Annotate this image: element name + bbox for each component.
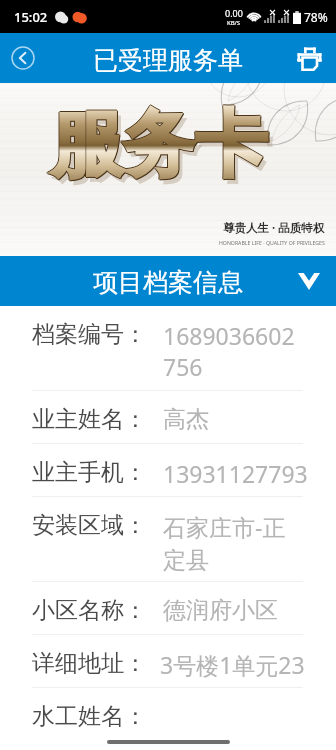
staticText: 服务卡 xyxy=(52,101,268,192)
staticText: KB/S xyxy=(227,19,241,27)
button[interactable]: 水工姓名： xyxy=(0,688,336,740)
button[interactable]: 详细地址： xyxy=(0,635,336,688)
staticText: 服务卡 xyxy=(51,99,267,190)
button[interactable]: 档案编号： xyxy=(0,306,336,391)
staticText: 13931127793 xyxy=(163,458,308,489)
button[interactable]: Print xyxy=(291,40,327,76)
staticText: 3号楼1单元23 xyxy=(160,649,336,680)
button[interactable]: Back xyxy=(5,40,41,76)
staticText: 服务卡 xyxy=(55,105,271,196)
staticText: 尊贵人生 · 品质特权 xyxy=(223,220,325,236)
staticText: 服务卡 xyxy=(51,101,267,192)
staticText: 项目档案信息 xyxy=(93,267,243,298)
staticText: 1689036602 756 xyxy=(163,320,308,383)
staticText: 安装区域： xyxy=(32,511,163,540)
staticText: 小区名称： xyxy=(32,596,163,625)
staticText: 已受理服务单 xyxy=(93,45,243,76)
staticText: 服务卡 xyxy=(51,100,267,191)
staticText: 服务卡 xyxy=(52,100,268,191)
staticText: 档案编号： xyxy=(32,320,163,349)
staticText: 78% xyxy=(304,9,328,25)
staticText: 德润府小区 xyxy=(163,596,308,625)
staticText: 业主姓名： xyxy=(32,405,163,434)
staticText: 详细地址： xyxy=(32,649,163,678)
other: Collapse xyxy=(298,273,320,290)
staticText: 石家庄市-正定县 xyxy=(163,511,308,575)
button[interactable]: 业主姓名： xyxy=(0,391,336,444)
staticText: 服务卡 xyxy=(50,100,266,191)
button[interactable]: 小区名称： xyxy=(0,582,336,635)
staticText: 业主手机： xyxy=(32,458,163,487)
button[interactable]: 安装区域： xyxy=(0,497,336,582)
staticText: 高杰 xyxy=(163,405,308,434)
staticText: HONORABLE LIFE · QUALITY OF PRIVILEGES xyxy=(219,239,325,246)
button[interactable]: 项目档案信息 xyxy=(0,256,336,306)
staticText: 0.00 xyxy=(225,7,243,19)
staticText: 水工姓名： xyxy=(32,702,163,731)
button[interactable]: 业主手机： xyxy=(0,444,336,497)
staticText: 15:02 xyxy=(14,8,48,26)
